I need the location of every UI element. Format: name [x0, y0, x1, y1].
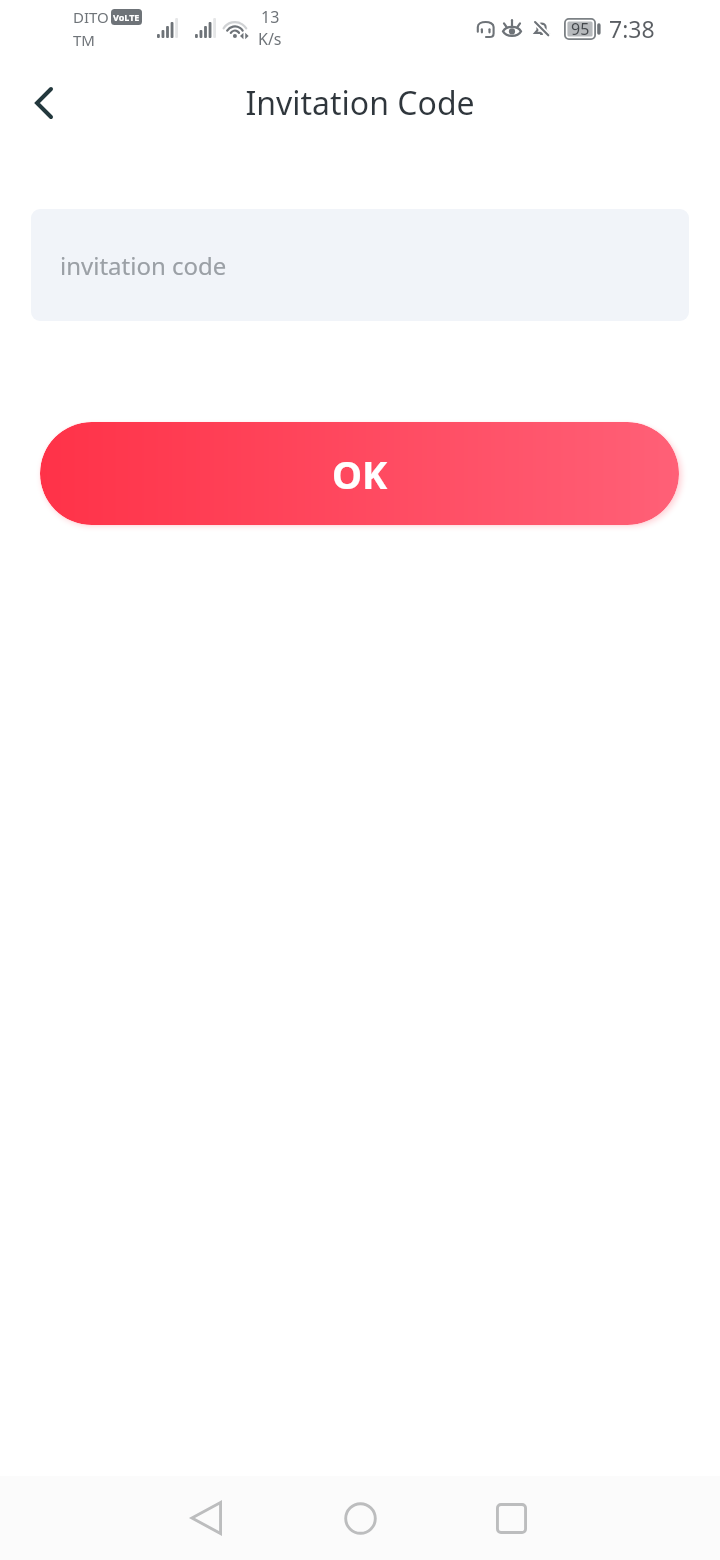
- staticText: Invitation Code: [245, 81, 475, 125]
- staticText: VoLTE: [113, 11, 140, 23]
- staticText: OK: [332, 448, 388, 500]
- button[interactable]: invitation code: [31, 209, 689, 321]
- staticText: K/s: [258, 28, 282, 50]
- button[interactable]: Back: [164, 1476, 248, 1560]
- button[interactable]: Recent apps: [469, 1476, 553, 1560]
- staticText: DITO: [73, 7, 109, 27]
- button[interactable]: OK: [40, 422, 679, 525]
- button[interactable]: Back: [2, 61, 86, 145]
- staticText: 13: [261, 6, 280, 28]
- button[interactable]: Home: [318, 1476, 402, 1560]
- staticText: invitation code: [60, 249, 227, 282]
- staticText: 7:38: [609, 13, 655, 44]
- staticText: TM: [73, 30, 95, 50]
- staticText: 95: [571, 18, 590, 40]
